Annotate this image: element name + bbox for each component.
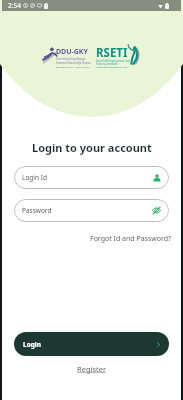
- staticText: RSETI: [96, 45, 128, 61]
- staticText: 2:54: [8, 1, 21, 10]
- other: Show password: [152, 206, 161, 215]
- staticText: Training Institute: [96, 62, 118, 66]
- other: Login: [155, 341, 162, 348]
- button[interactable]: Password: [14, 199, 169, 222]
- staticText: Rural Self Employment and: [96, 59, 131, 63]
- staticText: Login: [23, 340, 41, 349]
- staticText: Empowering India . Powering World: [56, 66, 90, 69]
- staticText: Login Id: [22, 173, 47, 182]
- staticText: Powering Rural Entrepreneurship: [96, 66, 128, 69]
- button[interactable]: Forgot Id and Password?: [90, 234, 172, 244]
- staticText: DDU-GKY: [56, 47, 88, 57]
- other: User: [153, 174, 161, 182]
- staticText: Deen Dayal Upadhyaya: [56, 57, 86, 61]
- button[interactable]: Login: [14, 332, 169, 356]
- staticText: Login to your account: [32, 140, 152, 155]
- button[interactable]: Register: [77, 364, 107, 374]
- staticText: Grameen Kaushalya Yojana: [56, 61, 91, 65]
- button[interactable]: Login Id: [14, 166, 169, 189]
- staticText: Password: [22, 206, 52, 215]
